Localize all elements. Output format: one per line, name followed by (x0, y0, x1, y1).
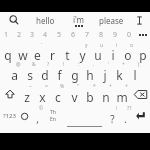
button[interactable]: 5 (52, 28, 66, 42)
button[interactable]: ! (52, 61, 67, 83)
button[interactable]: i (105, 42, 120, 61)
button[interactable]: = (34, 83, 50, 105)
button[interactable]: w (15, 42, 30, 61)
button[interactable]: 6 (66, 28, 80, 42)
staticText: = (45, 83, 48, 90)
staticText: o (124, 47, 132, 63)
button[interactable]: ( (127, 61, 142, 83)
staticText: e (34, 47, 41, 63)
staticText: 0 (127, 30, 132, 40)
staticText: 9 (113, 30, 118, 40)
staticText: q (4, 47, 12, 63)
staticText: i (111, 47, 115, 63)
button[interactable]: + (112, 61, 127, 83)
button[interactable]: ` (30, 42, 45, 61)
button[interactable]: Space (62, 105, 106, 127)
staticText: 6 (71, 30, 76, 40)
staticText: 8 (99, 30, 104, 40)
button[interactable]: 7 (80, 28, 94, 42)
staticText: ( (138, 61, 140, 68)
staticText: 3 (30, 30, 35, 40)
button[interactable]: . (82, 61, 97, 83)
button[interactable]: Enter (132, 105, 150, 127)
button[interactable]: p (135, 42, 150, 61)
staticText: r (50, 47, 55, 63)
staticText: . (124, 112, 127, 126)
button[interactable]: " (66, 83, 82, 105)
staticText: 4 (43, 30, 48, 40)
button[interactable]: o (120, 42, 135, 61)
staticText: ` (41, 42, 43, 49)
button[interactable]: please (95, 12, 128, 28)
button[interactable]: 4 (39, 28, 52, 42)
button[interactable]: 2 (13, 28, 26, 42)
button[interactable]: ?123 (0, 105, 18, 127)
button[interactable]: 1 (0, 28, 13, 42)
button[interactable]: Search (0, 12, 28, 28)
staticText: u (94, 47, 102, 63)
staticText: g (71, 67, 79, 83)
staticText: : (78, 61, 80, 68)
button[interactable]: More symbols (136, 28, 150, 42)
button[interactable]: i'm (62, 12, 95, 28)
staticText: d (41, 67, 49, 83)
staticText: y (85, 42, 88, 49)
staticText: © (39, 105, 44, 112)
button[interactable]: ?? (119, 105, 132, 127)
button[interactable]: + (114, 83, 130, 105)
staticText: ? (110, 112, 115, 126)
button[interactable]: Backspace (130, 83, 150, 105)
staticText: + (125, 83, 128, 90)
staticText: * (93, 83, 96, 90)
staticText: ' (108, 61, 110, 68)
button[interactable]: 9 (108, 28, 122, 42)
staticText: c (55, 89, 61, 105)
button[interactable]: % (50, 83, 66, 105)
staticText: s (27, 67, 33, 83)
staticText: h (86, 67, 94, 83)
staticText: j (103, 67, 107, 83)
button[interactable]: 3 (26, 28, 39, 42)
staticText: 1 (4, 30, 9, 40)
staticText: ! (116, 105, 118, 112)
button[interactable]: r (45, 42, 60, 61)
staticText: k (116, 67, 123, 83)
button[interactable]: Th (44, 105, 62, 127)
staticText: ?? (127, 105, 132, 112)
staticText: u (100, 42, 104, 49)
staticText: ?123 (3, 112, 16, 120)
staticText: ? (47, 61, 50, 68)
button[interactable]: 0 (122, 28, 136, 42)
button[interactable]: hello (28, 12, 62, 28)
button[interactable]: 8 (94, 28, 108, 42)
button[interactable]: y (75, 42, 90, 61)
button[interactable]: : (67, 61, 82, 83)
staticText: . (93, 61, 95, 68)
staticText: hello (36, 15, 55, 26)
staticText: o (130, 42, 134, 49)
button[interactable]: @ (7, 61, 22, 83)
button[interactable]: ' (97, 61, 112, 83)
staticText: % (60, 83, 65, 90)
button[interactable]: Emoji (18, 105, 31, 127)
staticText: v (71, 89, 78, 105)
button[interactable]: Shift (0, 83, 19, 105)
staticText: Th (50, 109, 56, 116)
button[interactable]: ~ (19, 83, 34, 105)
button[interactable]: ? (37, 61, 52, 83)
button[interactable]: t (60, 42, 75, 61)
button[interactable]: * (82, 83, 98, 105)
button[interactable]: q (0, 42, 15, 61)
button[interactable]: u (90, 42, 105, 61)
button[interactable]: © (31, 105, 44, 127)
button[interactable]: & (22, 61, 37, 83)
staticText: l (133, 67, 137, 83)
staticText: f (57, 67, 62, 83)
staticText: z (24, 89, 30, 105)
button[interactable]: ! (106, 105, 119, 127)
button[interactable]: + (98, 83, 114, 105)
staticText: 5 (57, 30, 62, 40)
button[interactable]: More options (128, 12, 150, 28)
staticText: a (11, 67, 18, 83)
staticText: n (102, 89, 110, 105)
